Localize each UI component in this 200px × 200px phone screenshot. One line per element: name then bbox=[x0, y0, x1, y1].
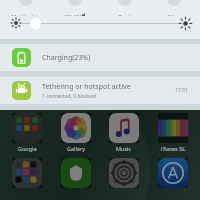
staticText: 1 connected, 0 blocked bbox=[42, 93, 96, 100]
button[interactable]: Music bbox=[102, 113, 146, 152]
button[interactable]: iTunes St. bbox=[151, 113, 195, 152]
button[interactable]: App bbox=[5, 158, 49, 188]
staticText: 17:31 bbox=[175, 87, 188, 94]
staticText: Google bbox=[18, 145, 37, 152]
staticText: Music bbox=[116, 145, 132, 152]
button[interactable]: Silent bbox=[151, 0, 197, 16]
button[interactable]: App bbox=[54, 158, 98, 188]
staticText: Mobile data bbox=[11, 13, 42, 16]
button[interactable]: WLAN bbox=[52, 0, 98, 16]
button[interactable]: Gallery bbox=[54, 113, 98, 152]
staticText: Tethering or hotspot active bbox=[42, 82, 131, 92]
button[interactable]: Google bbox=[5, 113, 49, 152]
staticText: WLAN bbox=[65, 13, 81, 16]
staticText: Charging(23%) bbox=[42, 53, 91, 63]
button[interactable]: Mobile data bbox=[3, 0, 49, 16]
button[interactable]: Tethering notification bbox=[0, 77, 200, 104]
button[interactable]: App bbox=[151, 158, 195, 188]
staticText: iTunes St. bbox=[161, 145, 186, 152]
button[interactable]: Torch bbox=[102, 0, 148, 16]
staticText: Torch bbox=[118, 13, 133, 16]
button[interactable]: App bbox=[102, 158, 146, 188]
staticText: Gallery bbox=[67, 145, 86, 152]
button[interactable]: Charging notification bbox=[0, 44, 200, 71]
staticText: Silent bbox=[167, 13, 182, 16]
